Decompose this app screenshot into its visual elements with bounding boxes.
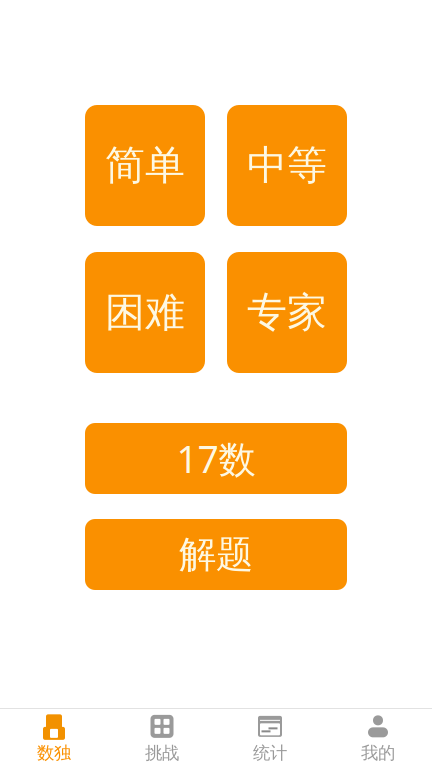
button[interactable]: 数独: [0, 709, 108, 767]
staticText: 中等: [247, 141, 327, 190]
button[interactable]: 简单: [85, 105, 205, 226]
button[interactable]: 统计: [216, 709, 324, 767]
staticText: 专家: [247, 288, 327, 337]
staticText: 简单: [105, 141, 185, 190]
button[interactable]: 中等: [227, 105, 347, 226]
staticText: 我的: [361, 742, 395, 764]
button[interactable]: 我的: [324, 709, 432, 767]
staticText: 困难: [105, 288, 185, 337]
button[interactable]: 17数: [85, 423, 347, 494]
staticText: 统计: [253, 742, 287, 764]
button[interactable]: 困难: [85, 252, 205, 373]
staticText: 挑战: [145, 742, 179, 764]
staticText: 数独: [37, 742, 71, 764]
button[interactable]: 解题: [85, 519, 347, 590]
button[interactable]: 专家: [227, 252, 347, 373]
staticText: 解题: [179, 532, 253, 577]
button[interactable]: 挑战: [108, 709, 216, 767]
staticText: 17数: [176, 434, 255, 483]
